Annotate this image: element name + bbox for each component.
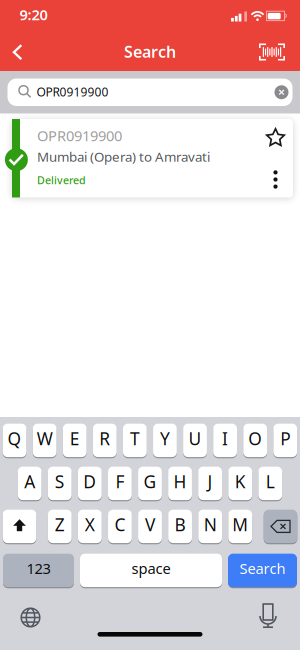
button[interactable]: U bbox=[183, 423, 207, 458]
button[interactable]: S bbox=[48, 466, 72, 501]
staticText: Search bbox=[239, 559, 285, 578]
staticText: W bbox=[37, 427, 53, 450]
staticText: B bbox=[175, 513, 186, 536]
staticText: T bbox=[130, 427, 140, 450]
button[interactable]: J bbox=[198, 466, 222, 501]
staticText: J bbox=[208, 470, 213, 493]
button[interactable]: I bbox=[213, 423, 237, 458]
staticText: N bbox=[204, 513, 217, 536]
button[interactable]: Q bbox=[3, 423, 26, 458]
button[interactable]: E bbox=[63, 423, 87, 458]
button[interactable] bbox=[264, 509, 297, 544]
staticText: G bbox=[143, 470, 156, 493]
button[interactable]: X bbox=[78, 509, 102, 544]
button[interactable]: K bbox=[228, 466, 252, 501]
button[interactable]: R bbox=[93, 423, 117, 458]
staticText: L bbox=[266, 470, 275, 493]
button[interactable]: V bbox=[138, 509, 162, 544]
staticText: O bbox=[248, 427, 262, 450]
staticText: R bbox=[99, 427, 110, 450]
button[interactable] bbox=[3, 509, 36, 544]
button[interactable]: L bbox=[258, 466, 282, 501]
button[interactable]: Z bbox=[48, 509, 72, 544]
staticText: OPR0919900 bbox=[37, 126, 122, 145]
button[interactable]: O bbox=[243, 423, 267, 458]
button[interactable] bbox=[20, 607, 40, 627]
staticText: Delivered bbox=[37, 173, 86, 187]
staticText: U bbox=[188, 427, 201, 450]
button[interactable]: space bbox=[80, 553, 222, 588]
staticText: Mumbai (Opera) to Amravati bbox=[37, 148, 210, 165]
button[interactable]: 123 bbox=[3, 553, 74, 588]
staticText: Q bbox=[8, 427, 22, 450]
button[interactable]: OPR0919900 bbox=[7, 78, 292, 106]
staticText: OPR0919900 bbox=[36, 84, 108, 100]
staticText: M bbox=[232, 513, 248, 536]
button[interactable]: OPR0919900 bbox=[12, 119, 293, 197]
staticText: I bbox=[222, 427, 228, 450]
staticText: S bbox=[55, 470, 65, 493]
staticText: D bbox=[83, 470, 96, 493]
button[interactable] bbox=[12, 44, 22, 61]
button[interactable]: G bbox=[138, 466, 162, 501]
staticText: P bbox=[280, 427, 290, 450]
button[interactable]: W bbox=[33, 423, 57, 458]
button[interactable]: F bbox=[108, 466, 132, 501]
staticText: space bbox=[131, 559, 170, 578]
staticText: 9:20 bbox=[19, 5, 47, 24]
button[interactable]: Search bbox=[228, 553, 297, 588]
staticText: Search bbox=[124, 41, 176, 62]
staticText: F bbox=[115, 470, 124, 493]
button[interactable]: D bbox=[78, 466, 102, 501]
button[interactable]: N bbox=[198, 509, 222, 544]
button[interactable]: B bbox=[168, 509, 192, 544]
button[interactable] bbox=[267, 167, 283, 191]
button[interactable]: A bbox=[18, 466, 42, 501]
button[interactable]: T bbox=[123, 423, 147, 458]
button[interactable]: Y bbox=[153, 423, 177, 458]
staticText: V bbox=[145, 513, 155, 536]
button[interactable]: M bbox=[228, 509, 252, 544]
staticText: H bbox=[174, 470, 187, 493]
staticText: X bbox=[85, 513, 95, 536]
staticText: A bbox=[24, 470, 35, 493]
staticText: K bbox=[235, 470, 246, 493]
staticText: Y bbox=[160, 427, 170, 450]
staticText: Z bbox=[55, 513, 65, 536]
button[interactable] bbox=[265, 127, 286, 149]
button[interactable]: H bbox=[168, 466, 192, 501]
button[interactable]: P bbox=[273, 423, 297, 458]
staticText: C bbox=[114, 513, 125, 536]
button[interactable] bbox=[256, 603, 280, 628]
button[interactable] bbox=[259, 43, 285, 60]
staticText: 123 bbox=[26, 559, 50, 578]
button[interactable]: C bbox=[108, 509, 132, 544]
staticText: E bbox=[70, 427, 80, 450]
